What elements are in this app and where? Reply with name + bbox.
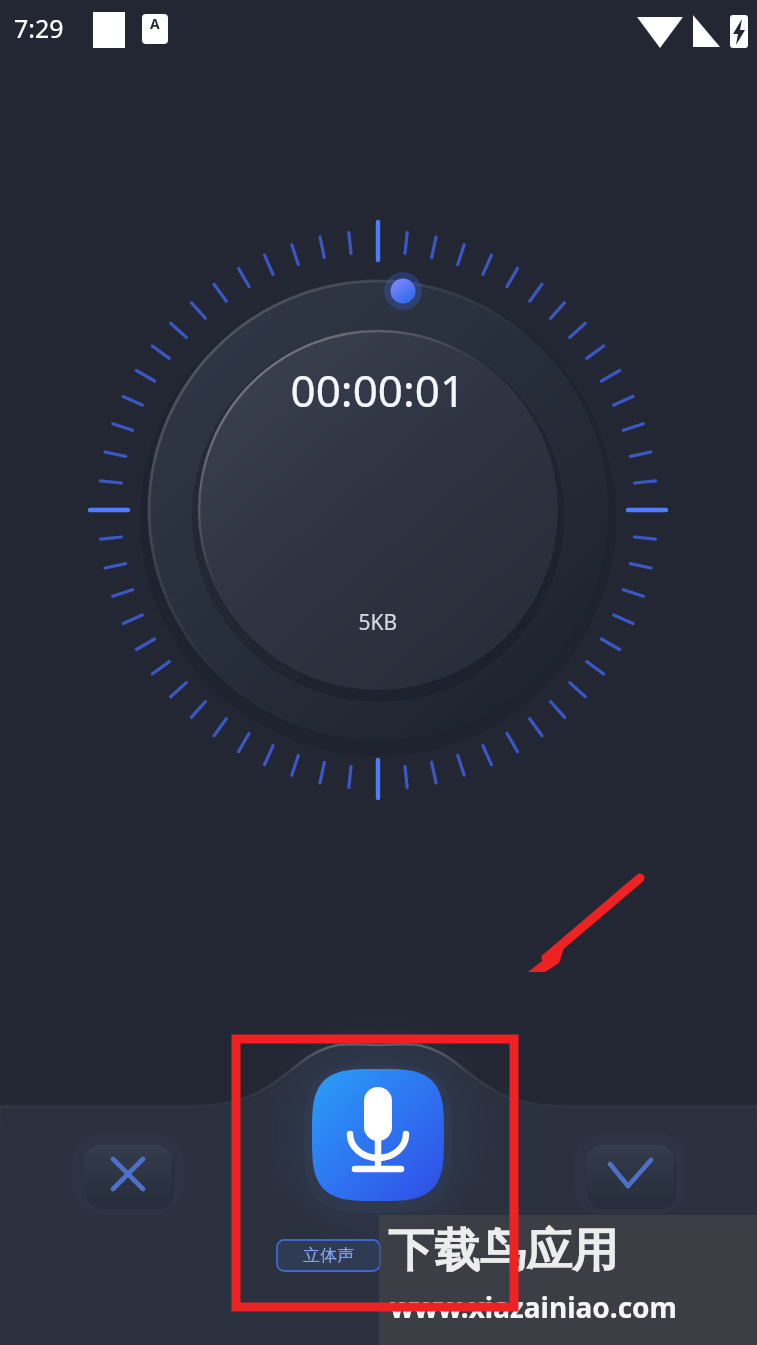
button[interactable]: Stereo: [277, 1240, 380, 1271]
button[interactable]: Recording timer dial: [148, 280, 608, 740]
button[interactable]: Record: [236, 1039, 514, 1307]
button[interactable]: Save recording: [586, 1145, 674, 1203]
button[interactable]: Cancel recording: [84, 1145, 172, 1203]
